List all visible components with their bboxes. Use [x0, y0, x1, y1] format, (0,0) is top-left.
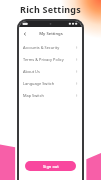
staticText: My Settings — [39, 31, 63, 37]
staticText: About Us — [23, 69, 40, 74]
staticText: Accounts & Security — [23, 45, 60, 50]
staticText: Terms & Privacy Policy — [23, 57, 64, 62]
button[interactable]: Terms & Privacy Policy — [19, 53, 82, 65]
button[interactable]: Accounts & Security — [19, 41, 82, 53]
button[interactable]: Back — [21, 30, 28, 37]
button[interactable]: About Us — [19, 65, 82, 77]
button[interactable]: Sign out — [25, 161, 76, 171]
staticText: Language Switch — [23, 81, 55, 86]
staticText: Rich Settings — [20, 3, 81, 15]
button[interactable]: Language Switch — [19, 77, 82, 89]
button[interactable]: Map Switch — [19, 89, 82, 101]
staticText: Map Switch — [23, 93, 44, 98]
staticText: Sign out — [43, 164, 59, 169]
